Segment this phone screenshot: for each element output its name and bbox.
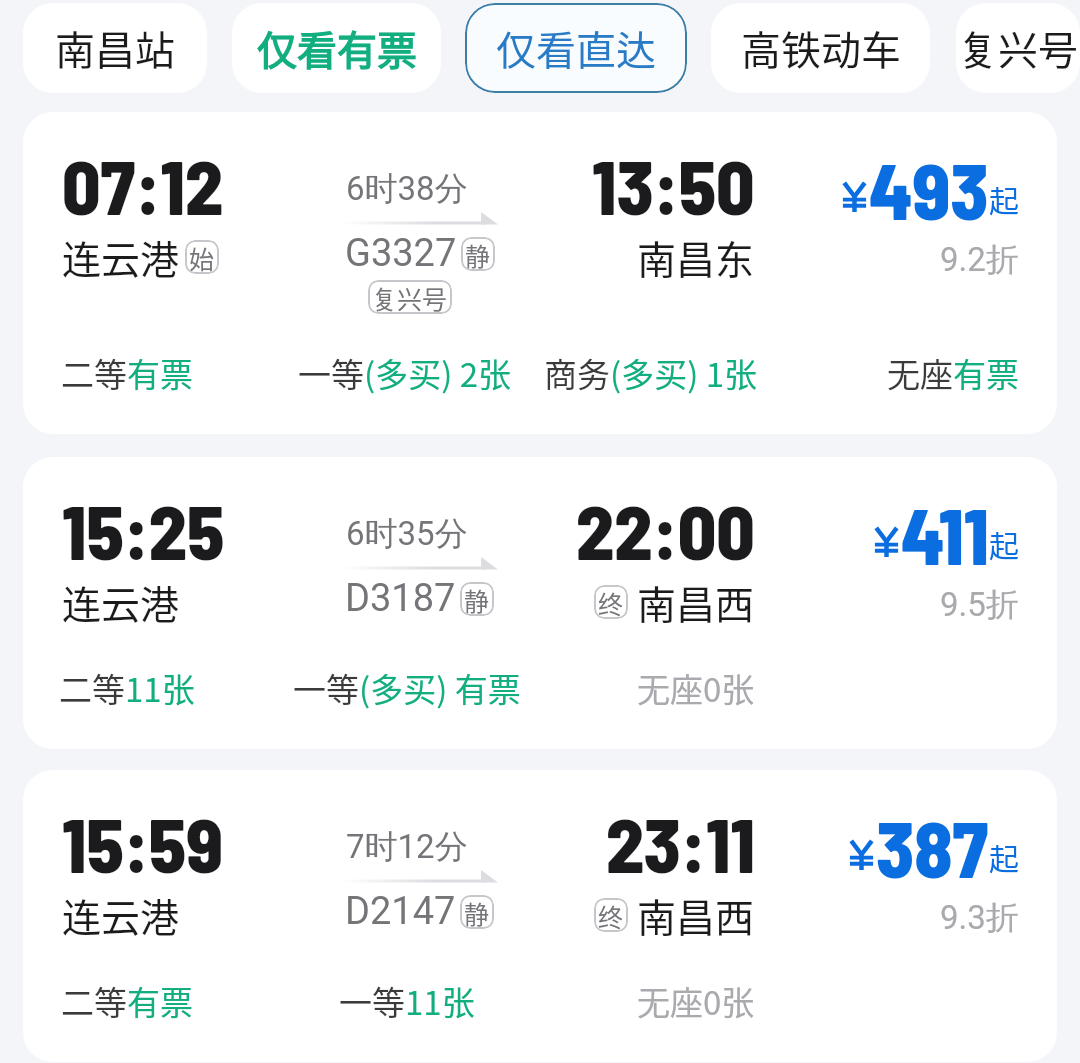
staticText: 终 (598, 898, 624, 932)
staticText: 0张 (703, 977, 755, 1025)
staticText: 11张 (405, 977, 475, 1025)
button[interactable]: 高铁动车 (711, 3, 930, 93)
staticText: 387 (876, 801, 989, 893)
staticText: 连云港 (62, 229, 180, 285)
staticText: 9.5折 (940, 584, 1019, 624)
staticText: 复兴号 (372, 280, 448, 314)
staticText: 终 (598, 585, 624, 619)
staticText: 二等 (61, 977, 127, 1025)
staticText: 有票 (953, 349, 1019, 397)
staticText: (多买) 1张 (610, 349, 758, 397)
staticText: 07:12 (62, 140, 224, 230)
staticText: 23:11 (606, 798, 755, 888)
staticText: G3327 (345, 231, 457, 276)
button[interactable]: 复兴号 (956, 3, 1080, 93)
staticText: 15:25 (62, 485, 225, 575)
staticText: 始 (189, 240, 215, 274)
staticText: 二等 (59, 664, 125, 712)
button[interactable]: 07:12 (23, 112, 1057, 434)
staticText: 南昌东 (637, 229, 755, 285)
button[interactable]: 仅看直达 (465, 3, 687, 93)
staticText: 静 (464, 895, 490, 929)
staticText: 二等 (61, 349, 127, 397)
staticText: 无座 (637, 664, 703, 712)
staticText: 起 (989, 522, 1019, 565)
staticText: 22:00 (576, 485, 755, 575)
button[interactable]: 15:59 (23, 770, 1057, 1062)
staticText: 15:59 (62, 798, 223, 888)
staticText: 493 (869, 143, 989, 235)
staticText: 无座 (637, 977, 703, 1025)
staticText: 复兴号 (958, 19, 1078, 77)
staticText: 南昌西 (637, 574, 755, 630)
button[interactable]: 仅看有票 (232, 3, 441, 93)
button[interactable]: 15:25 (23, 457, 1057, 749)
staticText: 一等 (339, 977, 405, 1025)
staticText: 静 (464, 582, 490, 616)
staticText: 11张 (125, 664, 195, 712)
staticText: 6时35分 (346, 513, 468, 555)
staticText: 411 (901, 488, 989, 580)
staticText: 6时38分 (346, 168, 468, 210)
staticText: 起 (989, 835, 1019, 878)
staticText: 有票 (127, 349, 193, 397)
staticText: 7时12分 (346, 826, 468, 868)
staticText: (多买) 2张 (364, 349, 512, 397)
staticText: 南昌西 (637, 887, 755, 943)
staticText: 南昌站 (55, 19, 175, 77)
staticText: 起 (989, 177, 1019, 220)
staticText: 无座 (887, 349, 953, 397)
staticText: 静 (465, 237, 491, 271)
staticText: 仅看有票 (257, 19, 417, 77)
staticText: 连云港 (62, 574, 180, 630)
staticText: 商务 (544, 349, 610, 397)
staticText: 一等 (293, 664, 359, 712)
staticText: 一等 (298, 349, 364, 397)
staticText: 有票 (127, 977, 193, 1025)
staticText: D2147 (345, 889, 456, 934)
staticText: (多买) 有票 (359, 664, 521, 712)
staticText: 连云港 (62, 887, 180, 943)
staticText: 9.3折 (940, 897, 1019, 937)
button[interactable]: 南昌站 (23, 3, 207, 93)
staticText: 9.2折 (940, 239, 1019, 279)
staticText: 13:50 (592, 140, 755, 230)
staticText: 0张 (703, 664, 755, 712)
staticText: D3187 (345, 576, 456, 621)
staticText: 仅看直达 (496, 19, 656, 77)
staticText: 高铁动车 (741, 19, 901, 77)
